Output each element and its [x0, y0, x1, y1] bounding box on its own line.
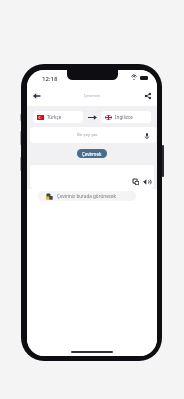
- button[interactable]: Bir şey yaz: [30, 127, 156, 143]
- button[interactable]: Copy: [131, 177, 140, 186]
- button[interactable]: Voice input: [142, 131, 151, 140]
- button[interactable]: İngilizce: [101, 111, 151, 123]
- staticText: 12:18: [42, 75, 58, 83]
- button[interactable]: Back: [29, 89, 43, 103]
- staticText: Çevirmen: [84, 93, 101, 98]
- staticText: Bir şey yaz: [77, 132, 98, 138]
- button[interactable]: Speak: [142, 177, 151, 186]
- staticText: Türkçe: [47, 114, 62, 120]
- staticText: Çevirmek: [82, 151, 102, 157]
- staticText: Çeviriniz burada görünecek: [57, 193, 117, 199]
- button[interactable]: Share: [141, 89, 155, 103]
- staticText: İngilizce: [115, 114, 133, 120]
- button[interactable]: Çeviriniz burada görünecek: [38, 191, 136, 201]
- button[interactable]: Çevirmek: [77, 149, 107, 158]
- button[interactable]: Türkçe: [33, 111, 83, 123]
